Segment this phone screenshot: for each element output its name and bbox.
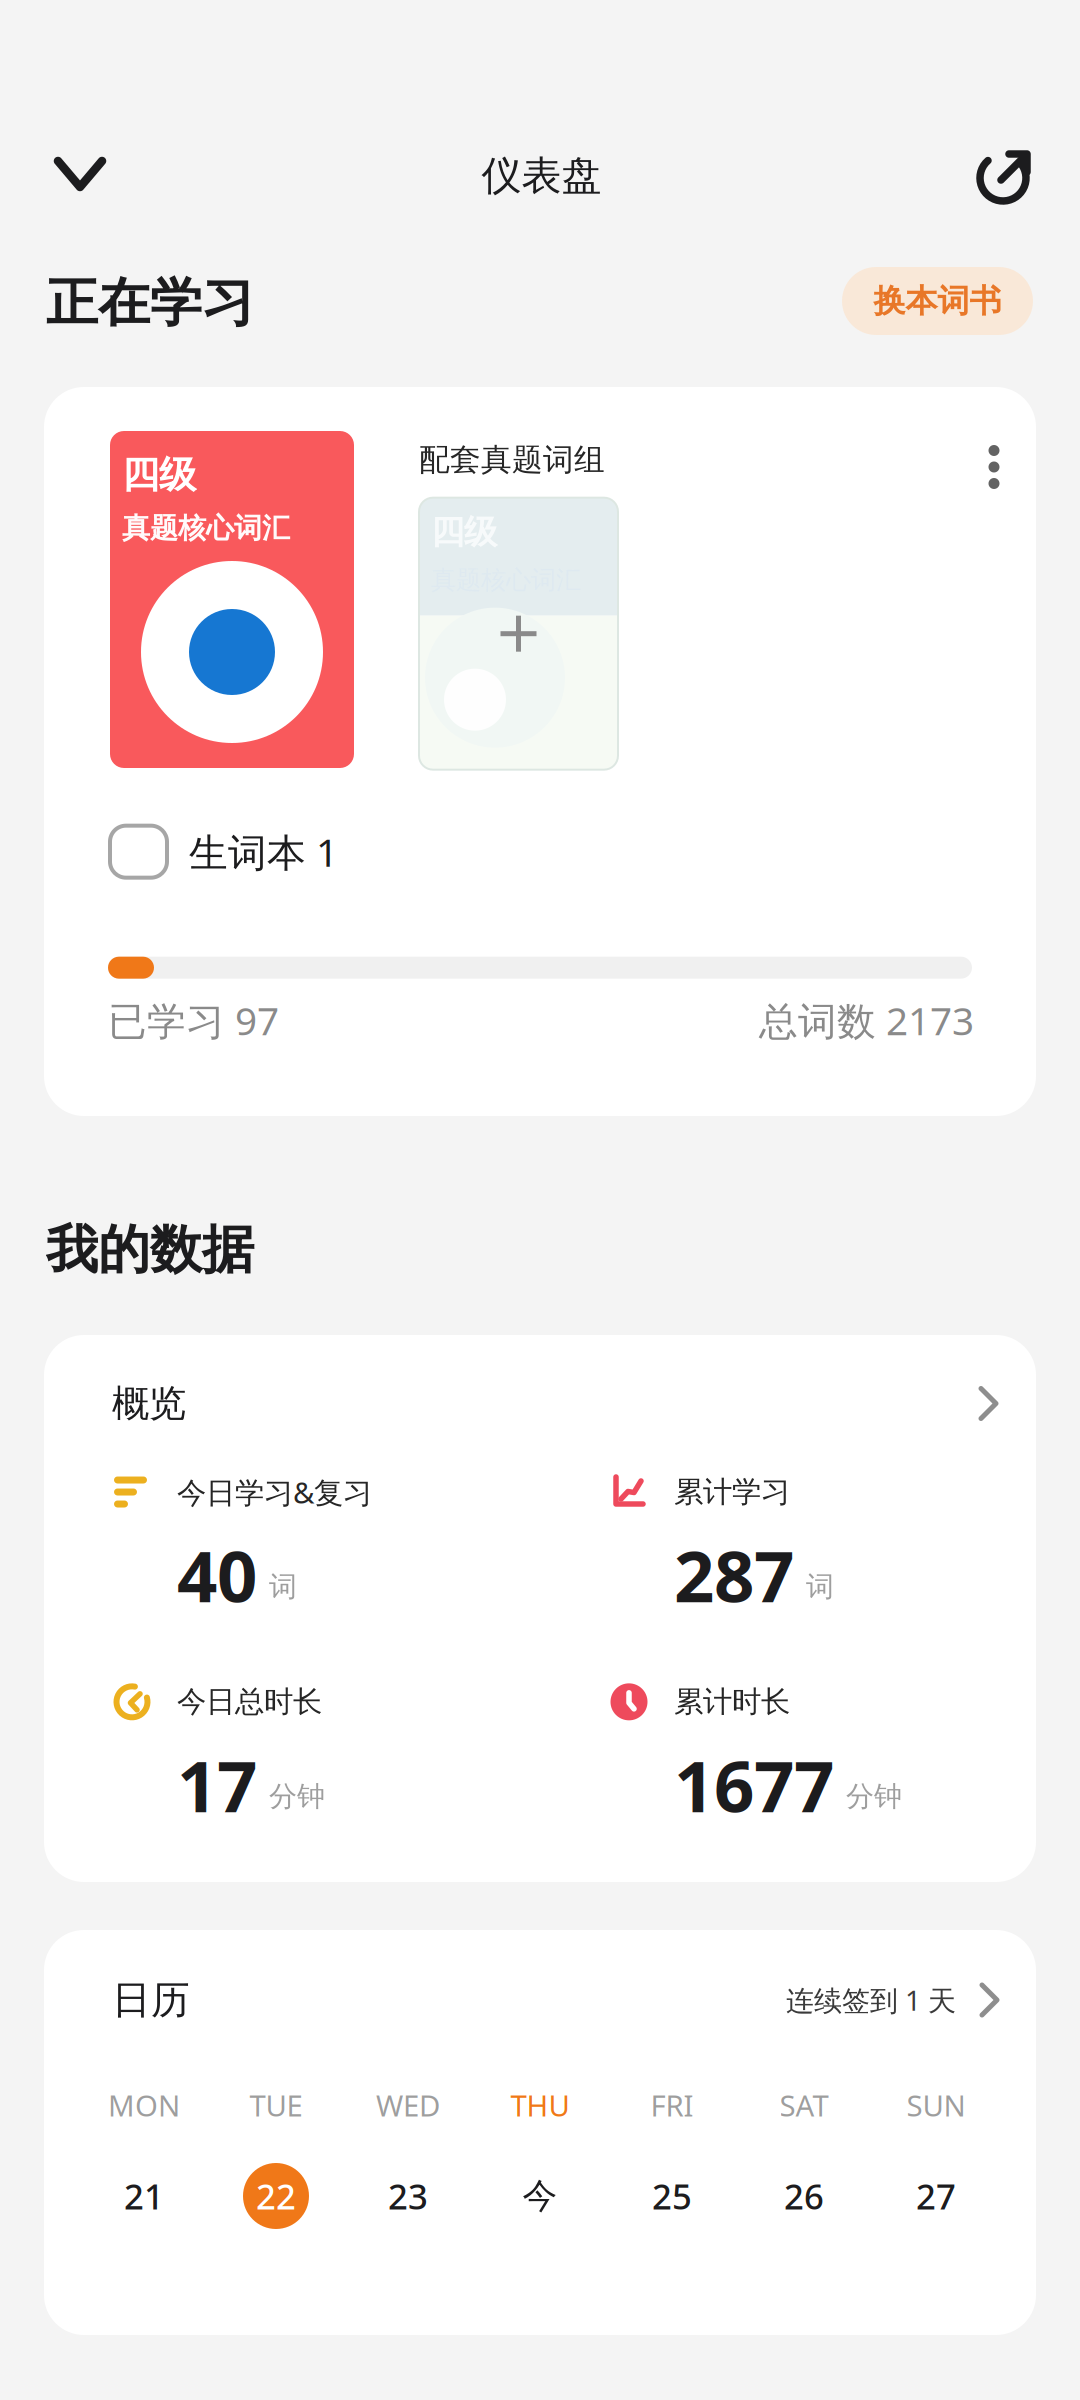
button[interactable]: 日历 — [44, 1930, 1036, 2070]
staticText: 正在学习 — [46, 271, 254, 335]
staticText: 25 — [652, 2173, 692, 2219]
staticText: 真题核心词汇 — [122, 511, 290, 545]
staticText: 四级 — [431, 512, 497, 553]
button[interactable]: 概览 — [44, 1335, 1036, 1472]
staticText: 今日学习&复习 — [177, 1472, 372, 1511]
staticText: 287 — [674, 1528, 794, 1622]
staticText: 1677 — [674, 1738, 834, 1832]
staticText: 26 — [784, 2173, 824, 2219]
staticText: 已学习 97 — [108, 995, 279, 1046]
staticText: 连续签到 1 天 — [786, 1981, 956, 2019]
staticText: SAT — [779, 2085, 828, 2124]
staticText: 40 — [177, 1528, 257, 1622]
staticText: 词 — [269, 1569, 297, 1604]
button[interactable]: Share — [976, 147, 1034, 205]
staticText: 累计学习 — [674, 1474, 790, 1510]
button[interactable]: More options — [971, 439, 1017, 495]
button[interactable]: 生词本 1 — [44, 770, 1036, 914]
staticText: 23 — [388, 2173, 428, 2219]
staticText: 22 — [256, 2173, 296, 2219]
staticText: FRI — [650, 2085, 693, 2124]
staticText: 21 — [124, 2173, 164, 2219]
staticText: 我的数据 — [46, 1218, 254, 1282]
staticText: 17 — [177, 1738, 257, 1832]
staticText: 27 — [916, 2173, 956, 2219]
staticText: 仪表盘 — [481, 151, 601, 200]
staticText: 分钟 — [846, 1779, 902, 1814]
staticText: 词 — [806, 1569, 834, 1604]
staticText: 总词数 2173 — [759, 995, 974, 1046]
staticText: 配套真题词组 — [419, 441, 605, 479]
staticText: SUN — [906, 2085, 965, 2124]
staticText: 分钟 — [269, 1779, 325, 1814]
staticText: THU — [510, 2085, 569, 2124]
staticText: TUE — [249, 2085, 302, 2124]
staticText: 累计时长 — [674, 1684, 790, 1720]
button[interactable]: 换本词书 — [842, 267, 1033, 335]
button[interactable]: Add companion book — [419, 498, 618, 770]
staticText: 今日总时长 — [177, 1684, 322, 1720]
staticText: 换本词书 — [873, 281, 1001, 321]
staticText: 日历 — [112, 1976, 190, 2024]
staticText: MON — [108, 2085, 180, 2124]
staticText: 今 — [522, 2175, 557, 2217]
staticText: 四级 — [122, 452, 196, 498]
staticText: WED — [376, 2085, 440, 2124]
staticText: 生词本 1 — [189, 826, 338, 877]
button[interactable]: Collapse — [53, 153, 107, 199]
staticText: 概览 — [112, 1381, 186, 1426]
